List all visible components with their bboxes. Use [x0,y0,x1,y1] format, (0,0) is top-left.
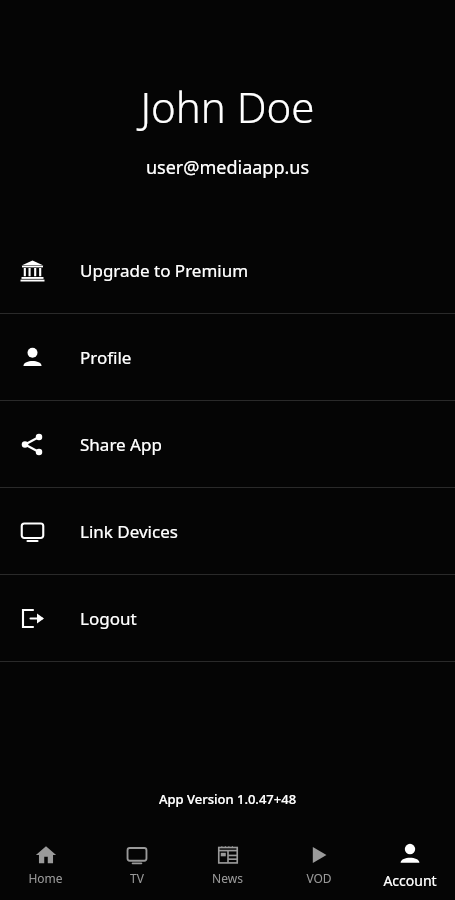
staticText: Upgrade to Premium [80,259,249,282]
button[interactable]: Link Devices [0,488,455,574]
button[interactable]: Account [364,834,455,896]
staticText: Profile [80,346,132,369]
button[interactable]: Home [0,834,91,896]
button[interactable]: News [182,834,273,896]
staticText: News [212,870,243,886]
staticText: John Doe [0,78,455,135]
staticText: Logout [80,607,137,630]
staticText: VOD [306,870,332,886]
button[interactable]: TV [91,834,182,896]
button[interactable]: Share App [0,401,455,487]
button[interactable]: Logout [0,575,455,661]
button[interactable]: VOD [273,834,364,896]
staticText: Share App [80,433,162,456]
staticText: Link Devices [80,520,178,543]
staticText: Account [383,871,437,890]
staticText: TV [130,870,144,886]
staticText: App Version 1.0.47+48 [0,790,455,808]
button[interactable]: Upgrade to Premium [0,227,455,313]
staticText: user@mediaapp.us [0,155,455,180]
staticText: Home [28,870,63,886]
button[interactable]: Profile [0,314,455,400]
